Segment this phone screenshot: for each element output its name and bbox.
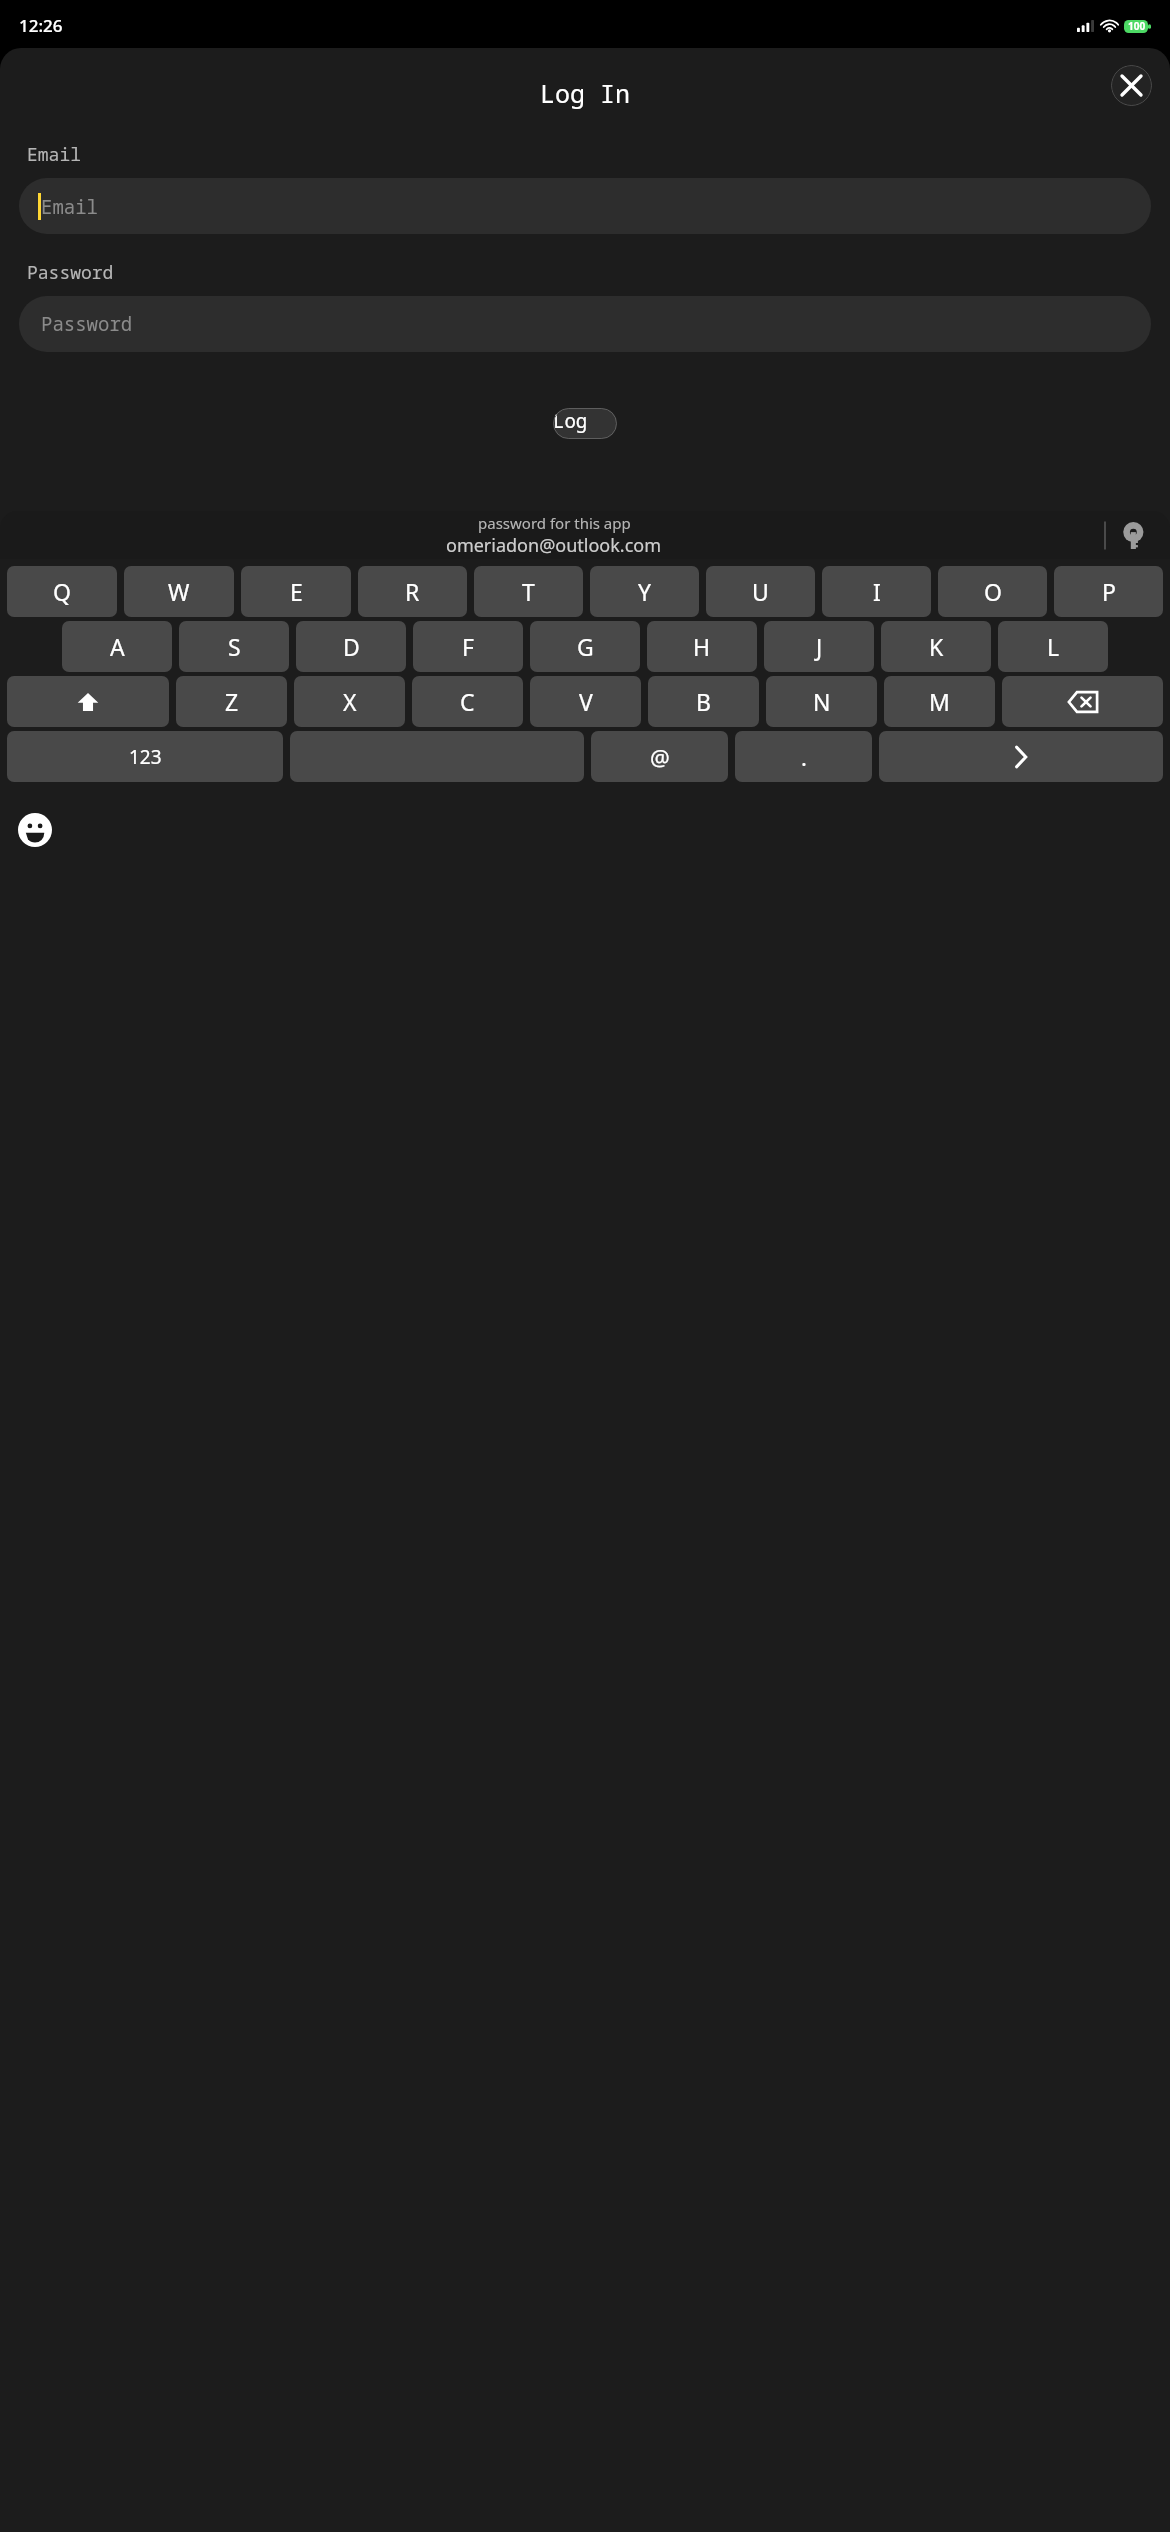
staticText: B [696,686,711,717]
button[interactable]: I [822,566,931,617]
button[interactable]: Emoji [18,813,52,847]
staticText: L [1047,631,1060,662]
staticText: C [460,686,475,717]
staticText: F [462,631,474,662]
staticText: I [873,576,881,607]
button[interactable]: F [413,621,523,672]
staticText: S [228,631,241,662]
button[interactable]: U [706,566,815,617]
button[interactable]: A [62,621,172,672]
button[interactable]: Email [19,178,1151,234]
button[interactable]: Shift [7,676,169,727]
button[interactable]: M [884,676,995,727]
staticText: K [929,631,944,662]
staticText: Email [41,194,99,220]
button[interactable]: . [735,731,872,782]
button[interactable]: E [241,566,351,617]
button[interactable]: X [294,676,405,727]
staticText: J [816,631,823,662]
staticText: Log In [540,76,631,110]
button[interactable]: T [474,566,583,617]
staticText: password for this app [478,513,631,533]
button[interactable]: 123 [7,731,283,782]
staticText: P [1102,576,1116,607]
staticText: E [290,576,303,607]
button[interactable]: O [938,566,1047,617]
button[interactable]: Z [176,676,287,727]
button[interactable]: Password [19,296,1151,352]
button[interactable]: B [648,676,759,727]
button[interactable]: H [647,621,757,672]
button[interactable]: Log In [553,408,617,439]
staticText: A [110,631,125,662]
button[interactable]: S [179,621,289,672]
staticText: Y [638,576,652,607]
button[interactable]: K [881,621,991,672]
staticText: X [343,686,357,717]
button[interactable]: Backspace [1002,676,1163,727]
staticText: @ [650,742,670,772]
button[interactable]: password for this app [0,511,1170,559]
staticText: Z [225,686,239,717]
staticText: Email [27,142,81,167]
staticText: N [813,686,831,717]
button[interactable]: @ [591,731,728,782]
button[interactable]: D [296,621,406,672]
button[interactable]: V [530,676,641,727]
button[interactable]: Q [7,566,117,617]
button[interactable]: Enter [879,731,1163,782]
button[interactable]: P [1054,566,1163,617]
staticText: . [801,742,807,772]
button[interactable]: W [124,566,234,617]
staticText: 123 [129,744,162,770]
button[interactable]: N [766,676,877,727]
staticText: D [343,631,360,662]
button[interactable]: G [530,621,640,672]
staticText: H [693,631,711,662]
button[interactable]: Close [1111,65,1152,106]
button[interactable]: Y [590,566,699,617]
staticText: 12:26 [19,14,63,37]
staticText: Password [27,260,114,285]
button[interactable]: J [764,621,874,672]
staticText: Log In [553,408,617,439]
staticText: G [577,631,594,662]
staticText: O [984,576,1002,607]
staticText: Password [41,311,133,337]
staticText: W [168,576,190,607]
button[interactable]: L [998,621,1108,672]
staticText: 100 [1128,19,1146,33]
staticText: omeriadon@outlook.com [446,533,662,558]
staticText: V [579,686,593,717]
staticText: Q [53,576,71,607]
button[interactable]: R [358,566,467,617]
button[interactable]: C [412,676,523,727]
staticText: U [752,576,769,607]
staticText: T [522,576,535,607]
staticText: R [405,576,420,607]
staticText: M [929,686,950,717]
